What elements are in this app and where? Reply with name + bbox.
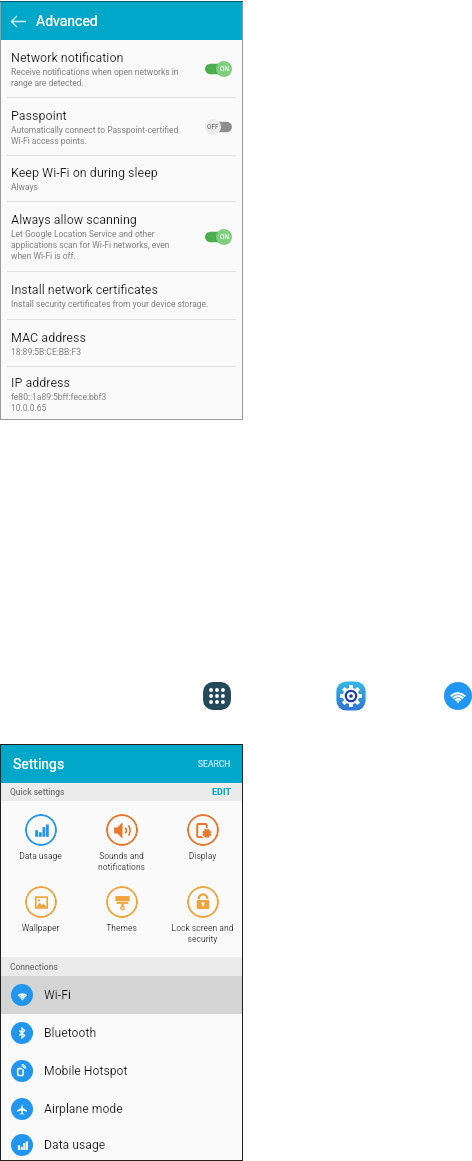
button[interactable]: Always allow scanning [0,202,243,272]
button[interactable]: Wallpaper [0,873,81,957]
staticText: Wallpaper [0,923,81,933]
button[interactable]: Bluetooth [0,1014,243,1052]
staticText: Keep Wi-Fi on during sleep [11,165,158,180]
button[interactable]: Sounds and notifications [81,801,162,873]
staticText: Always allow scanning [11,212,137,227]
button[interactable]: Toggle on [205,61,232,77]
button[interactable]: Apps [200,679,234,713]
staticText: Wi-Fi [44,988,71,1002]
staticText: fe80::1a89:5bff:fece:bbf3 10.0.0.65 [11,392,107,413]
button[interactable]: Airplane mode [0,1090,243,1128]
staticText: OFF [207,123,219,131]
staticText: Install security certificates from your … [11,299,209,309]
button[interactable]: Network notification [0,40,243,98]
button[interactable]: Wi-Fi [0,976,243,1014]
staticText: IP address [11,375,70,390]
staticText: Network notification [11,50,124,65]
button[interactable]: Keep Wi-Fi on during sleep [0,156,243,202]
button[interactable]: IP address [0,367,243,420]
button[interactable]: Data usage [0,1128,243,1161]
staticText: EDIT [212,787,231,798]
button[interactable]: Settings [334,679,368,713]
staticText: ON [220,233,230,241]
button[interactable]: Lock screen and security [162,873,243,957]
button[interactable]: Install network certificates [0,272,243,320]
button[interactable]: Wi-Fi [444,682,472,710]
staticText: Receive notifications when open networks… [11,67,179,88]
staticText: Connections [10,962,58,972]
button[interactable]: Passpoint [0,98,243,156]
button[interactable]: Display [162,801,243,873]
staticText: SEARCH [198,759,231,769]
staticText: Mobile Hotspot [44,1064,128,1078]
button[interactable]: Back [9,12,27,30]
button[interactable]: Themes [81,873,162,957]
staticText: Passpoint [11,108,67,123]
staticText: ON [220,65,230,73]
staticText: Install network certificates [11,282,158,297]
staticText: Advanced [36,13,98,29]
staticText: Quick settings [10,787,65,797]
button[interactable]: SEARCH [196,757,233,771]
button[interactable]: Toggle on [205,229,232,245]
staticText: Data usage [0,851,81,861]
staticText: MAC address [11,330,86,345]
staticText: Bluetooth [44,1026,97,1040]
staticText: Data usage [44,1138,106,1152]
staticText: Airplane mode [44,1102,123,1116]
staticText: 18:89:5B:CE:BB:F3 [11,347,81,357]
staticText: Themes [81,923,162,933]
staticText: Sounds and notifications [81,851,162,872]
button[interactable]: MAC address [0,320,243,367]
staticText: Let Google Location Service and other ap… [11,229,170,261]
staticText: Display [162,851,243,861]
staticText: Always [11,182,38,192]
staticText: Automatically connect to Passpoint-certi… [11,125,179,146]
staticText: Settings [13,756,65,772]
button[interactable]: EDIT [210,785,233,800]
button[interactable]: Data usage [0,801,81,873]
button[interactable]: Mobile Hotspot [0,1052,243,1090]
button[interactable]: Toggle off [205,119,232,135]
staticText: Lock screen and security [162,923,243,944]
